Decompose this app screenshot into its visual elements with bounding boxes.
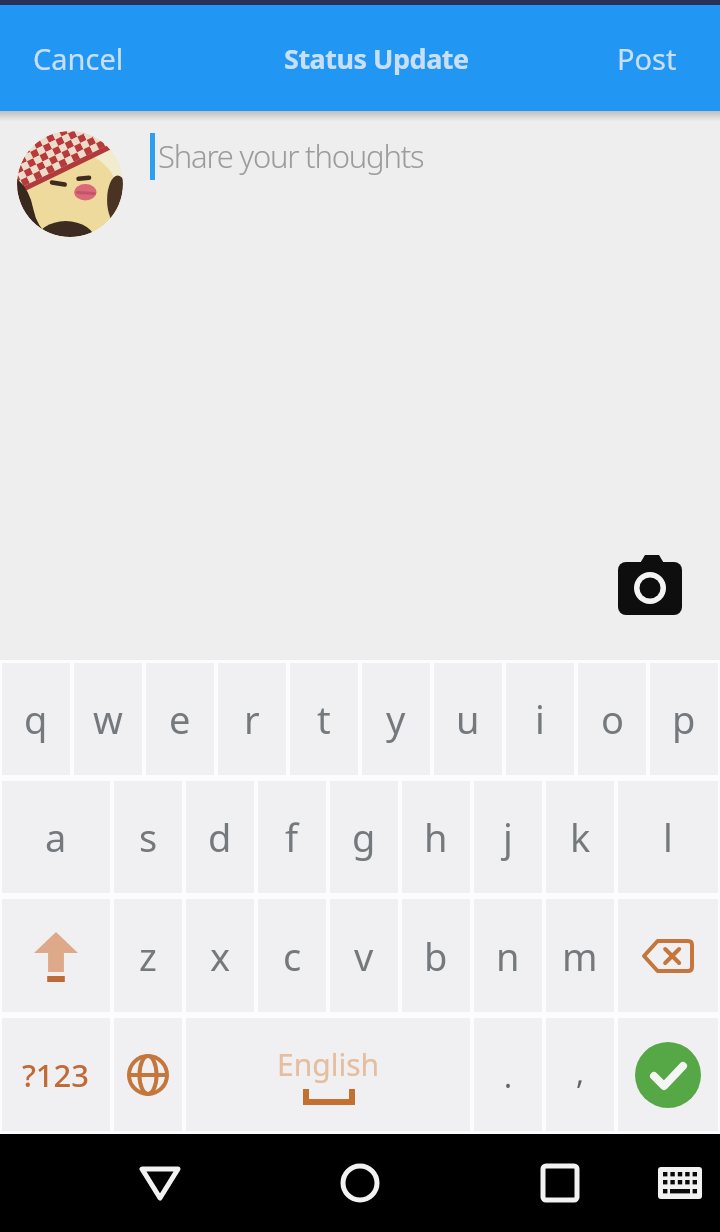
button[interactable]: Post <box>607 29 720 88</box>
staticText: k <box>570 811 591 863</box>
button[interactable]: c <box>258 899 326 1012</box>
button[interactable]: English <box>186 1018 470 1131</box>
staticText: z <box>139 930 157 982</box>
staticText: g <box>352 811 376 863</box>
button[interactable]: t <box>290 663 358 775</box>
button[interactable]: q <box>2 663 70 775</box>
staticText: w <box>93 693 123 745</box>
button[interactable]: b <box>402 899 470 1012</box>
button[interactable] <box>120 1143 200 1223</box>
staticText: Post <box>617 39 677 78</box>
staticText: Cancel <box>33 39 124 78</box>
staticText: l <box>663 811 673 863</box>
staticText: , <box>576 1052 585 1093</box>
staticText: m <box>562 930 598 982</box>
button[interactable]: p <box>650 663 718 775</box>
button[interactable]: . <box>474 1018 542 1131</box>
staticText: a <box>45 811 67 863</box>
staticText: f <box>285 811 299 863</box>
staticText: b <box>424 930 448 982</box>
button[interactable]: l <box>618 781 718 893</box>
staticText: e <box>169 693 191 745</box>
button[interactable] <box>618 899 718 1012</box>
button[interactable]: k <box>546 781 614 893</box>
staticText: r <box>244 693 260 745</box>
staticText: v <box>354 930 374 982</box>
button[interactable]: r <box>218 663 286 775</box>
staticText: d <box>208 811 232 863</box>
button[interactable]: n <box>474 899 542 1012</box>
staticText: i <box>535 693 545 745</box>
button[interactable]: h <box>402 781 470 893</box>
staticText: s <box>139 811 158 863</box>
button[interactable]: f <box>258 781 326 893</box>
staticText: n <box>496 930 520 982</box>
button[interactable] <box>2 899 110 1012</box>
button[interactable] <box>320 1143 400 1223</box>
button[interactable] <box>520 1143 600 1223</box>
staticText: . <box>504 1056 513 1097</box>
button[interactable]: w <box>74 663 142 775</box>
button[interactable]: d <box>186 781 254 893</box>
button[interactable]: j <box>474 781 542 893</box>
staticText: c <box>283 930 302 982</box>
staticText: y <box>386 693 406 745</box>
button[interactable]: m <box>546 899 614 1012</box>
staticText: o <box>601 693 624 745</box>
staticText: x <box>210 930 231 982</box>
button[interactable]: s <box>114 781 182 893</box>
button[interactable]: y <box>362 663 430 775</box>
button[interactable]: u <box>434 663 502 775</box>
button[interactable]: o <box>578 663 646 775</box>
button[interactable]: z <box>114 899 182 1012</box>
staticText: t <box>317 693 331 745</box>
staticText: q <box>24 693 48 745</box>
button[interactable] <box>618 1018 718 1131</box>
button[interactable] <box>618 555 684 617</box>
button[interactable] <box>17 131 123 237</box>
button[interactable]: x <box>186 899 254 1012</box>
button[interactable]: e <box>146 663 214 775</box>
staticText: h <box>424 811 448 863</box>
button[interactable]: ?123 <box>2 1018 110 1131</box>
staticText: Status Update <box>284 40 469 77</box>
button[interactable] <box>114 1018 182 1131</box>
button[interactable]: a <box>2 781 110 893</box>
staticText: p <box>672 693 696 745</box>
staticText: English <box>277 1044 380 1085</box>
button[interactable] <box>654 1157 706 1209</box>
button[interactable]: v <box>330 899 398 1012</box>
staticText: ?123 <box>22 1054 90 1096</box>
staticText: u <box>456 693 480 745</box>
button[interactable]: g <box>330 781 398 893</box>
button[interactable]: i <box>506 663 574 775</box>
staticText: Share your thoughts <box>158 135 424 177</box>
staticText: j <box>503 811 513 863</box>
button[interactable]: , <box>546 1018 614 1131</box>
button[interactable]: Cancel <box>0 29 134 88</box>
